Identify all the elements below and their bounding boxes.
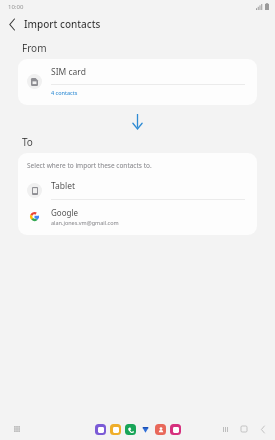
staticText: 4 contacts: [51, 89, 78, 96]
button[interactable]: Phone: [125, 424, 136, 435]
staticText: Tablet: [51, 180, 76, 192]
button[interactable]: Recents: [219, 423, 231, 435]
staticText: To: [22, 135, 33, 149]
staticText: 10:00: [8, 3, 24, 11]
button[interactable]: Contacts: [155, 424, 166, 435]
button[interactable]: SIM card: [18, 59, 257, 101]
button[interactable]: Gallery: [170, 424, 181, 435]
button[interactable]: Apps: [10, 422, 24, 436]
staticText: SIM card: [51, 66, 86, 78]
staticText: Import contacts: [24, 17, 101, 31]
button[interactable]: Google: [18, 206, 257, 227]
staticText: Google: [51, 207, 78, 218]
staticText: alan.jones.vm@gmail.com: [51, 219, 119, 226]
staticText: From: [22, 41, 47, 55]
button[interactable]: Tablet: [18, 178, 257, 202]
button[interactable]: Chat: [140, 424, 151, 435]
button[interactable]: Internet: [95, 424, 106, 435]
button[interactable]: Back: [257, 423, 269, 435]
button[interactable]: Back: [3, 15, 21, 33]
staticText: Select where to import these contacts to…: [27, 161, 152, 170]
button[interactable]: Home: [238, 423, 250, 435]
button[interactable]: Messages: [110, 424, 121, 435]
